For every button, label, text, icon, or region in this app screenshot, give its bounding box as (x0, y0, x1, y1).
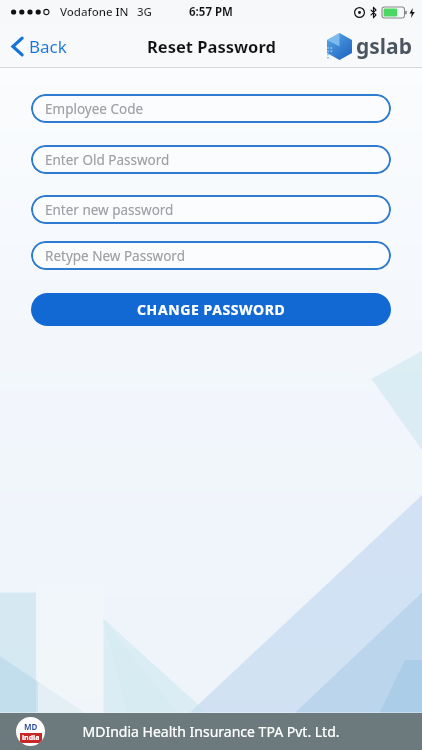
staticText: 3G (137, 4, 152, 20)
staticText: gslab (356, 32, 412, 61)
staticText: Reset Password (147, 35, 276, 57)
staticText: 6:57 PM (189, 4, 233, 20)
staticText: Enter Old Password (45, 151, 170, 169)
staticText: Back (29, 35, 67, 58)
button[interactable]: Enter Old Password (31, 145, 391, 174)
staticText: india (22, 733, 40, 743)
staticText: Retype New Password (45, 247, 185, 265)
staticText: MDIndia Health Insurance TPA Pvt. Ltd. (82, 722, 340, 741)
staticText: Enter new password (45, 201, 174, 219)
staticText: CHANGE PASSWORD (137, 300, 286, 319)
button[interactable]: Retype New Password (31, 241, 391, 270)
staticText: MD (24, 721, 38, 732)
button[interactable]: Back (8, 31, 71, 62)
button[interactable]: Employee Code (31, 94, 391, 123)
button[interactable]: CHANGE PASSWORD (31, 293, 391, 326)
staticText: Vodafone IN (60, 4, 129, 20)
button[interactable]: Enter new password (31, 195, 391, 224)
staticText: Employee Code (45, 100, 144, 118)
